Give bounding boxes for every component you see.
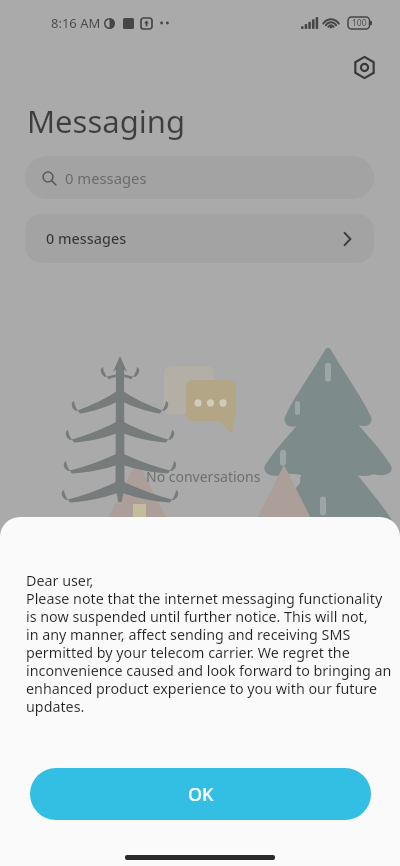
button[interactable]: OK xyxy=(30,768,371,820)
button[interactable]: Settings xyxy=(348,51,380,83)
button[interactable]: 0 messages xyxy=(25,214,374,263)
button[interactable]: 0 messages xyxy=(25,156,374,199)
staticText: Dear user, Please note that the internet… xyxy=(26,571,392,716)
staticText: 0 messages xyxy=(65,168,147,188)
staticText: 8:16 AM xyxy=(51,14,101,32)
staticText: Messaging xyxy=(27,100,185,142)
staticText: No conversations xyxy=(146,467,261,486)
staticText: 100 xyxy=(352,17,367,29)
staticText: 0 messages xyxy=(46,229,127,249)
staticText: OK xyxy=(188,782,214,807)
